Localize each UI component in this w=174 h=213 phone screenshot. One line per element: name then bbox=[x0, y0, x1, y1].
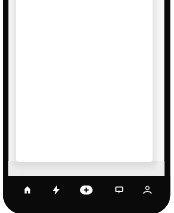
button[interactable]: Messages bbox=[108, 177, 130, 203]
button[interactable]: Home bbox=[16, 177, 38, 203]
button[interactable]: Activity bbox=[45, 177, 67, 203]
button[interactable]: Add bbox=[75, 177, 97, 203]
button[interactable]: Profile bbox=[136, 177, 158, 203]
